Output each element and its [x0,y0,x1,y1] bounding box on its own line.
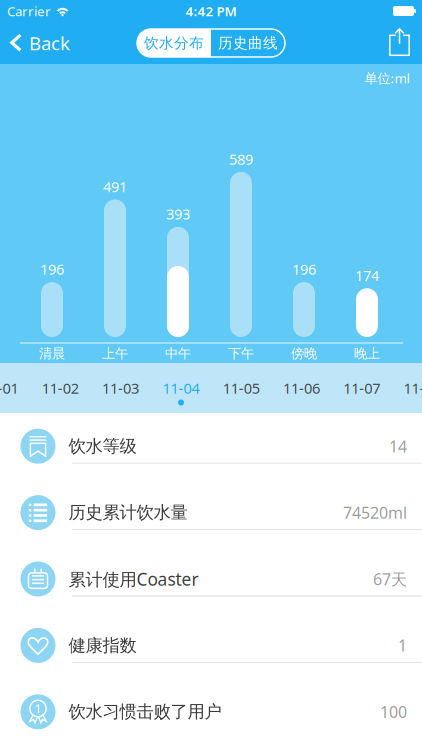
staticText: 589 [229,149,253,169]
staticText: 上午 [102,345,128,362]
staticText: 饮水等级 [68,436,136,457]
staticText: 11-05 [223,378,260,398]
button[interactable]: 累计使用Coaster [0,546,422,612]
staticText: 下午 [228,345,254,362]
button[interactable]: 11-03 [91,363,151,413]
staticText: 11-06 [283,378,320,398]
staticText: 74520ml [343,502,407,523]
staticText: 1 [34,700,41,716]
button[interactable]: 11-02 [30,363,90,413]
staticText: 傍晚 [291,345,317,362]
staticText: 饮水分布 [144,34,204,52]
staticText: Carrier [7,2,51,20]
staticText: Back [29,31,70,55]
staticText: 100 [380,701,407,722]
staticText: 11-08 [404,378,422,398]
staticText: 饮水习惯击败了用户 [68,701,221,722]
button[interactable]: Back [0,31,70,55]
button[interactable]: 历史累计饮水量 [0,479,422,546]
button[interactable]: 饮水分布 [137,29,211,57]
staticText: 11-02 [42,378,79,398]
button[interactable]: 11-05 [211,363,271,413]
staticText: 历史曲线 [218,34,278,52]
staticText: 中午 [165,345,191,362]
staticText: 晚上 [354,345,380,362]
staticText: 196 [292,259,316,279]
staticText: 单位:ml [364,69,409,87]
staticText: 11-03 [102,378,139,398]
button[interactable]: 11-06 [271,363,331,413]
staticText: 11-01 [0,378,18,398]
button[interactable]: 健康指数 [0,612,422,679]
staticText: 累计使用Coaster [68,567,198,590]
button[interactable]: 11-04 [151,363,211,413]
button[interactable]: 11-01 [0,363,30,413]
staticText: 14 [389,436,407,457]
button[interactable]: 1 [0,679,422,745]
staticText: 174 [355,265,379,285]
button[interactable]: 11-08 [392,363,422,413]
staticText: 11-07 [343,378,380,398]
button[interactable]: 饮水等级 [0,413,422,479]
staticText: 491 [103,177,127,196]
staticText: 393 [166,204,190,224]
staticText: 历史累计饮水量 [68,502,187,523]
staticText: 4:42 PM [185,2,236,20]
staticText: 196 [40,259,64,279]
button[interactable]: Share [389,29,422,57]
button[interactable]: 历史曲线 [211,29,285,57]
button[interactable]: 11-07 [332,363,392,413]
staticText: 健康指数 [68,635,136,656]
staticText: 清晨 [39,345,65,362]
staticText: 11-04 [162,378,199,398]
staticText: 67天 [373,568,407,590]
staticText: 1 [398,635,407,656]
